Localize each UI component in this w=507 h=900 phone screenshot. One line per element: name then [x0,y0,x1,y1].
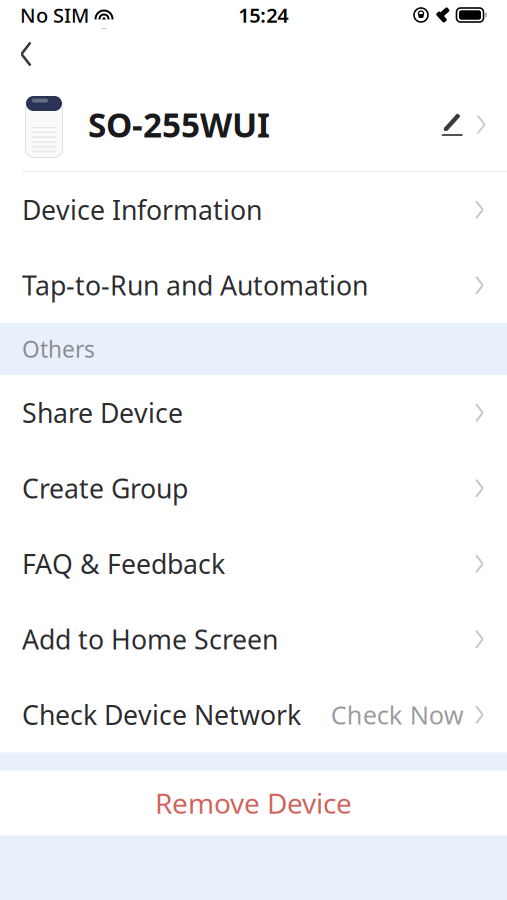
button[interactable]: Add to Home Screen [0,601,507,677]
staticText: No SIM [20,2,89,28]
staticText: Check Now [331,698,464,731]
staticText: 15:24 [238,2,288,28]
button[interactable]: SO-255WUI [0,78,507,171]
staticText: Add to Home Screen [22,621,278,657]
button[interactable]: FAQ & Feedback [0,526,507,601]
staticText: Remove Device [155,784,352,822]
button[interactable]: Back [0,33,48,75]
button[interactable]: Device Information [0,172,507,247]
button[interactable]: Create Group [0,450,507,526]
button[interactable]: Remove Device [0,770,507,835]
staticText: Tap-to-Run and Automation [22,267,368,303]
staticText: SO-255WUI [88,102,270,147]
staticText: FAQ & Feedback [22,546,225,581]
staticText: Check Device Network [22,697,301,732]
staticText: Device Information [22,192,262,227]
button[interactable]: Check Device Network [0,677,507,752]
button[interactable]: Share Device [0,375,507,450]
staticText: Create Group [22,470,188,506]
button[interactable]: Tap-to-Run and Automation [0,247,507,323]
staticText: Share Device [22,395,183,430]
staticText: Others [22,334,95,364]
